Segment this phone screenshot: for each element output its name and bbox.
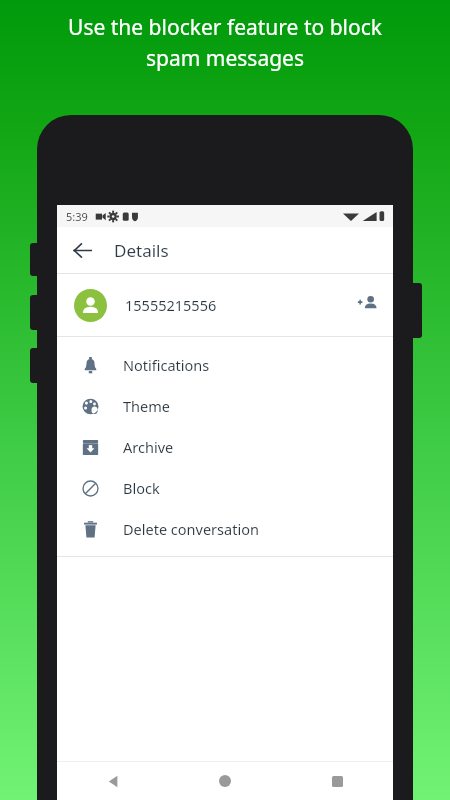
button[interactable]: Home xyxy=(169,762,281,800)
button[interactable]: 15555215556 xyxy=(57,274,393,336)
button[interactable]: Recents xyxy=(281,762,393,800)
staticText: Delete conversation xyxy=(123,519,259,539)
button[interactable]: Delete conversation xyxy=(57,508,393,549)
button[interactable]: Add contact xyxy=(347,285,387,325)
button[interactable]: Theme xyxy=(57,385,393,426)
staticText: Theme xyxy=(123,396,170,416)
staticText: Details xyxy=(114,239,169,262)
button[interactable]: Notifications xyxy=(57,344,393,385)
staticText: Use the blocker feature to block spam me… xyxy=(16,13,434,72)
staticText: 5:39 xyxy=(66,209,88,224)
button[interactable]: Back xyxy=(64,232,100,268)
staticText: Block xyxy=(123,478,160,498)
button[interactable]: Archive xyxy=(57,426,393,467)
staticText: Notifications xyxy=(123,355,210,375)
staticText: Archive xyxy=(123,437,174,457)
button[interactable]: Block xyxy=(57,467,393,508)
staticText: 15555215556 xyxy=(125,295,347,315)
button[interactable]: Back xyxy=(57,762,169,800)
